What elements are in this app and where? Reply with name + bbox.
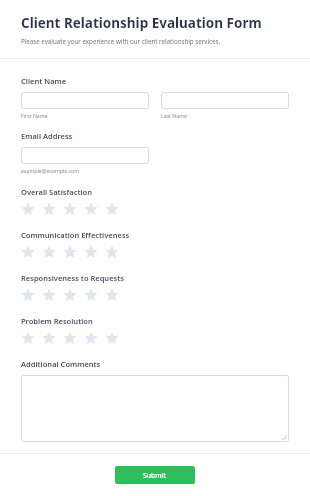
staticText: Email Address xyxy=(21,131,73,141)
button[interactable] xyxy=(21,92,149,109)
staticText: Problem Resolution xyxy=(21,316,93,326)
button[interactable]: Responsiveness to Requests rating 5 star… xyxy=(105,287,126,302)
staticText: Please evaluate your experience with our… xyxy=(21,37,221,45)
staticText: First Name xyxy=(21,112,48,119)
button[interactable]: Overall Satisfaction rating 3 stars xyxy=(63,201,84,216)
button[interactable]: Communication Effectiveness rating 5 sta… xyxy=(105,244,126,259)
button[interactable]: Overall Satisfaction rating 4 stars xyxy=(84,201,105,216)
staticText: Communication Effectiveness xyxy=(21,230,130,240)
staticText: Responsiveness to Requests xyxy=(21,273,124,283)
button[interactable] xyxy=(21,375,289,442)
button[interactable]: Problem Resolution rating 3 stars xyxy=(63,330,84,345)
button[interactable]: Responsiveness to Requests rating 1 star… xyxy=(21,287,42,302)
button[interactable] xyxy=(161,92,289,109)
staticText: Client Relationship Evaluation Form xyxy=(21,14,262,32)
button[interactable]: Submit xyxy=(115,466,195,484)
staticText: Overall Satisfaction xyxy=(21,187,92,197)
staticText: Additional Comments xyxy=(21,359,101,369)
button[interactable]: Overall Satisfaction rating 1 stars xyxy=(21,201,42,216)
button[interactable]: Responsiveness to Requests rating 2 star… xyxy=(42,287,63,302)
button[interactable]: Communication Effectiveness rating 1 sta… xyxy=(21,244,42,259)
button[interactable]: Communication Effectiveness rating 4 sta… xyxy=(84,244,105,259)
button[interactable]: Responsiveness to Requests rating 4 star… xyxy=(84,287,105,302)
button[interactable] xyxy=(21,147,149,164)
button[interactable]: Overall Satisfaction rating 5 stars xyxy=(105,201,126,216)
button[interactable]: Responsiveness to Requests rating 3 star… xyxy=(63,287,84,302)
staticText: example@example.com xyxy=(21,167,80,174)
button[interactable]: Communication Effectiveness rating 2 sta… xyxy=(42,244,63,259)
staticText: Client Name xyxy=(21,76,67,86)
button[interactable]: Problem Resolution rating 1 stars xyxy=(21,330,42,345)
button[interactable]: Problem Resolution rating 2 stars xyxy=(42,330,63,345)
button[interactable]: Problem Resolution rating 4 stars xyxy=(84,330,105,345)
staticText: Submit xyxy=(143,471,167,480)
button[interactable]: Problem Resolution rating 5 stars xyxy=(105,330,126,345)
button[interactable]: Communication Effectiveness rating 3 sta… xyxy=(63,244,84,259)
button[interactable]: Overall Satisfaction rating 2 stars xyxy=(42,201,63,216)
staticText: Last Name xyxy=(161,112,187,119)
